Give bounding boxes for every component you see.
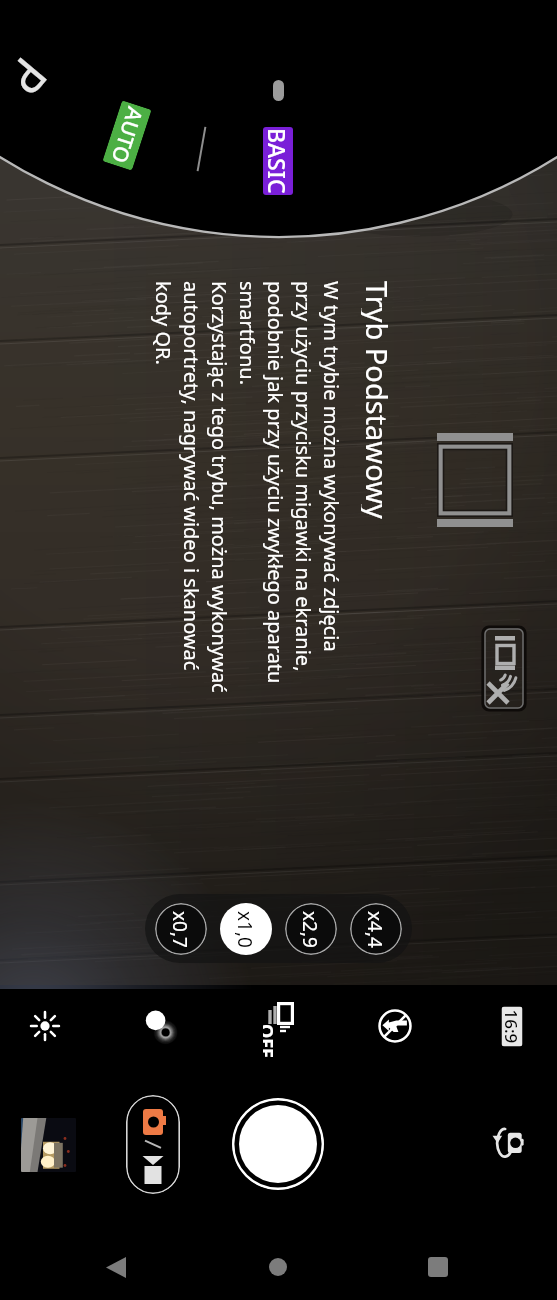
staticText: P — [0, 48, 63, 110]
button[interactable]: Gallery — [21, 1118, 76, 1172]
button[interactable]: Recent apps — [408, 1237, 468, 1297]
button[interactable]: Switch camera — [484, 1119, 530, 1165]
button[interactable]: Home — [248, 1237, 308, 1297]
staticText: x1,0 — [234, 911, 258, 948]
staticText: Tryb Podstawowy — [361, 281, 397, 519]
button[interactable]: Photo or video mode — [126, 1095, 180, 1194]
button[interactable]: Flash off — [354, 985, 436, 1067]
staticText: 16:9 — [501, 1009, 522, 1043]
button[interactable]: x1,0 — [220, 903, 272, 955]
button[interactable]: QR scanning off — [483, 627, 525, 710]
staticText: x4,4 — [364, 911, 388, 948]
button[interactable]: x2,9 — [285, 903, 337, 955]
button[interactable]: Framing guide — [437, 433, 513, 527]
button[interactable]: Aspect ratio 16:9 — [477, 982, 546, 1070]
button[interactable]: x4,4 — [350, 903, 402, 955]
staticText: W tym trybie można wykonywać zdjęcia prz… — [150, 281, 345, 693]
staticText: x2,9 — [299, 911, 323, 948]
button[interactable]: AUTO — [102, 100, 152, 171]
button[interactable]: BASIC — [263, 127, 293, 195]
button[interactable]: Brightness — [6, 987, 84, 1065]
button[interactable]: Bokeh — [116, 982, 204, 1070]
staticText: AUTO — [104, 103, 150, 167]
button[interactable]: x0,7 — [155, 903, 207, 955]
staticText: OFF — [263, 1024, 279, 1058]
staticText: BASIC — [263, 128, 293, 194]
staticText: x0,7 — [169, 911, 193, 948]
button[interactable]: Motion photo off — [240, 979, 320, 1074]
button[interactable]: Back — [86, 1237, 146, 1297]
button[interactable]: Take photo — [232, 1098, 324, 1190]
